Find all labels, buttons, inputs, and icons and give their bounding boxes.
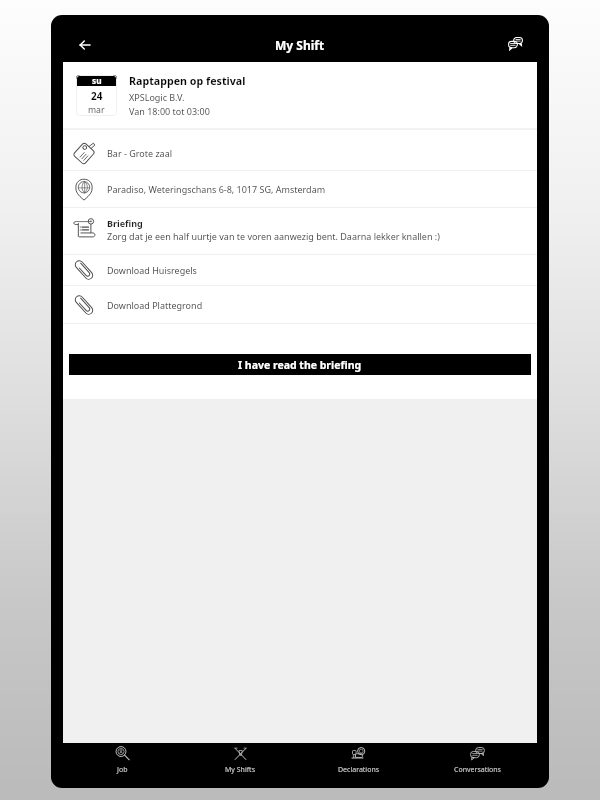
staticText: 24 (91, 89, 103, 103)
staticText: mar (88, 104, 105, 116)
button[interactable]: I have read the briefing (69, 354, 531, 375)
staticText: XPSLogic B.V. (129, 91, 185, 103)
staticText: I have read the briefing (238, 358, 362, 372)
button[interactable]: su (63, 62, 537, 128)
button[interactable]: Job (63, 743, 181, 776)
staticText: su (92, 75, 102, 86)
staticText: Zorg dat je een half uurtje van te voren… (107, 230, 440, 242)
button[interactable]: Declarations (299, 743, 418, 776)
button[interactable]: Briefing (63, 208, 537, 254)
button[interactable]: Bar - Grote zaal (63, 130, 537, 170)
button[interactable]: My Shifts (181, 743, 299, 776)
staticText: Job (117, 765, 128, 775)
staticText: Declarations (338, 765, 380, 775)
button[interactable]: Paradiso, Weteringschans 6-8, 1017 SG, A… (63, 171, 537, 207)
staticText: Paradiso, Weteringschans 6-8, 1017 SG, A… (107, 183, 326, 195)
staticText: Briefing (107, 217, 143, 229)
staticText: Van 18:00 tot 03:00 (129, 105, 210, 117)
staticText: Conversations (454, 765, 501, 775)
button[interactable]: Back (68, 28, 102, 62)
staticText: Bar - Grote zaal (107, 147, 173, 159)
staticText: Raptappen op festival (129, 74, 246, 89)
staticText: My Shifts (225, 765, 256, 775)
staticText: My Shift (275, 37, 325, 53)
staticText: Download Plattegrond (107, 299, 203, 311)
button[interactable]: Download Plattegrond (63, 286, 537, 323)
button[interactable]: Conversations (418, 743, 537, 776)
staticText: Download Huisregels (107, 264, 197, 276)
button[interactable]: Download Huisregels (63, 255, 537, 285)
button[interactable]: Conversations (498, 28, 532, 62)
